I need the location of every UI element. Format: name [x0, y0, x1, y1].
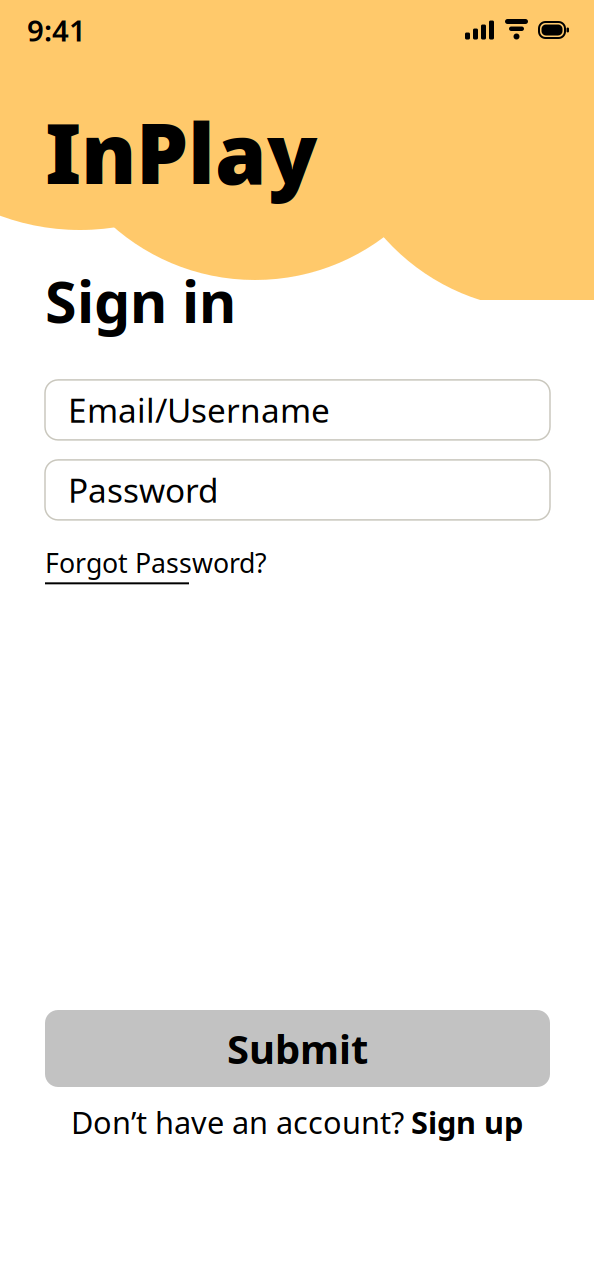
button[interactable]: Password	[45, 460, 550, 520]
button[interactable]: Forgot Password?	[0, 541, 267, 588]
staticText: Password	[68, 468, 219, 512]
button[interactable]: Email/Username	[45, 380, 550, 440]
button[interactable]: Don’t have an account?	[0, 1104, 594, 1140]
staticText: Don’t have an account?	[71, 1102, 404, 1142]
staticText: Email/Username	[68, 388, 330, 432]
button[interactable]: Submit	[45, 1010, 550, 1087]
staticText: 9:41	[27, 10, 86, 49]
staticText: Forgot Password?	[45, 545, 267, 580]
staticText: Sign in	[45, 263, 236, 339]
staticText: Sign up	[411, 1102, 523, 1142]
staticText: InPlay	[45, 97, 317, 207]
staticText: Submit	[227, 1022, 368, 1075]
